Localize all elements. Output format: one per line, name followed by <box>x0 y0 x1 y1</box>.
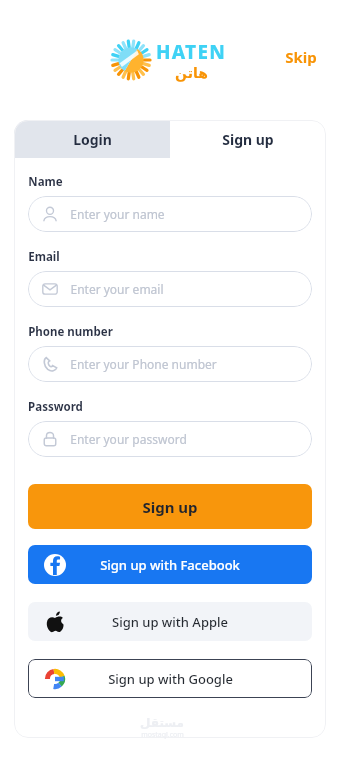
button[interactable]: Enter your name <box>28 196 312 232</box>
button[interactable]: Sign up with Google <box>28 659 312 698</box>
staticText: Enter your Phone number <box>70 356 217 372</box>
staticText: mostaql.com <box>141 730 184 740</box>
button[interactable]: Login <box>14 120 170 158</box>
staticText: Sign up with Google <box>108 670 233 688</box>
staticText: Name <box>28 174 63 190</box>
button[interactable]: Sign up with Apple <box>28 602 312 641</box>
staticText: Phone number <box>28 324 113 340</box>
staticText: HATEN <box>156 39 226 65</box>
staticText: Sign up <box>222 130 274 149</box>
staticText: Sign up with Apple <box>112 613 228 631</box>
staticText: Enter your password <box>70 431 187 447</box>
staticText: Login <box>73 130 112 149</box>
staticText: Sign up with Facebook <box>100 556 240 574</box>
button[interactable]: Sign up with Facebook <box>28 545 312 584</box>
staticText: Sign up <box>142 497 198 517</box>
staticText: Email <box>28 249 60 265</box>
staticText: Enter your name <box>70 206 165 222</box>
staticText: مستقل <box>140 716 184 730</box>
button[interactable]: Enter your password <box>28 421 312 457</box>
staticText: Enter your email <box>70 281 164 297</box>
staticText: Password <box>28 399 83 415</box>
button[interactable]: Sign up <box>170 120 326 158</box>
button[interactable]: Enter your email <box>28 271 312 307</box>
staticText: Skip <box>285 47 317 67</box>
button[interactable]: Enter your Phone number <box>28 346 312 382</box>
button[interactable]: Skip <box>281 44 321 70</box>
button[interactable]: Sign up <box>28 484 312 529</box>
staticText: هاتن <box>175 65 208 81</box>
